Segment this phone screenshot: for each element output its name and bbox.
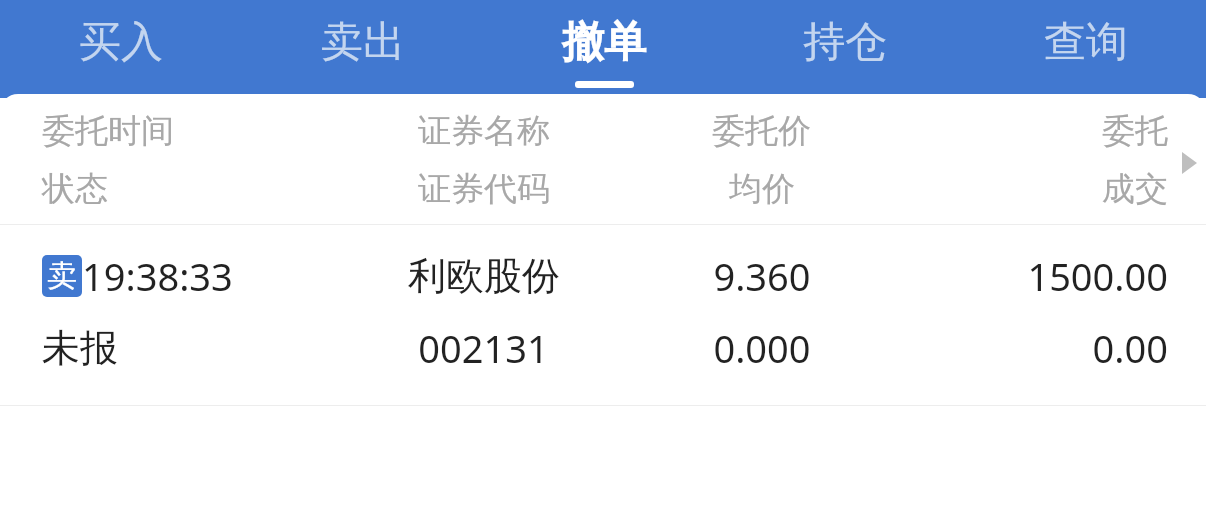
staticText: 19:38:33 [82,250,233,302]
staticText: 1500.00 [1027,250,1168,302]
staticText: 证券名称 [418,110,550,152]
button[interactable]: 撤单 [483,0,724,98]
other: Scroll right [1176,150,1202,176]
button[interactable]: 买入 [0,0,242,98]
button[interactable]: 持仓 [724,0,965,98]
button[interactable]: 查询 [965,0,1206,98]
staticText: 002131 [418,322,549,374]
staticText: 未报 [42,324,118,372]
staticText: 卖出 [321,16,405,69]
staticText: 委托 [1102,110,1168,152]
staticText: 状态 [42,168,108,210]
staticText: 委托价 [712,110,811,152]
button[interactable]: 卖出 [242,0,483,98]
staticText: 成交 [1102,168,1168,210]
staticText: 查询 [1044,16,1128,69]
button[interactable]: 卖 [0,225,1206,405]
staticText: 卖 [47,257,77,295]
staticText: 持仓 [803,16,887,69]
staticText: 0.00 [1092,322,1168,374]
staticText: 委托时间 [42,110,174,152]
staticText: 0.000 [713,322,811,374]
staticText: 利欧股份 [408,252,560,300]
staticText: 撤单 [562,16,646,69]
staticText: 均价 [729,168,795,210]
staticText: 9.360 [713,250,811,302]
staticText: 证券代码 [418,168,550,210]
staticText: 买入 [79,16,163,69]
